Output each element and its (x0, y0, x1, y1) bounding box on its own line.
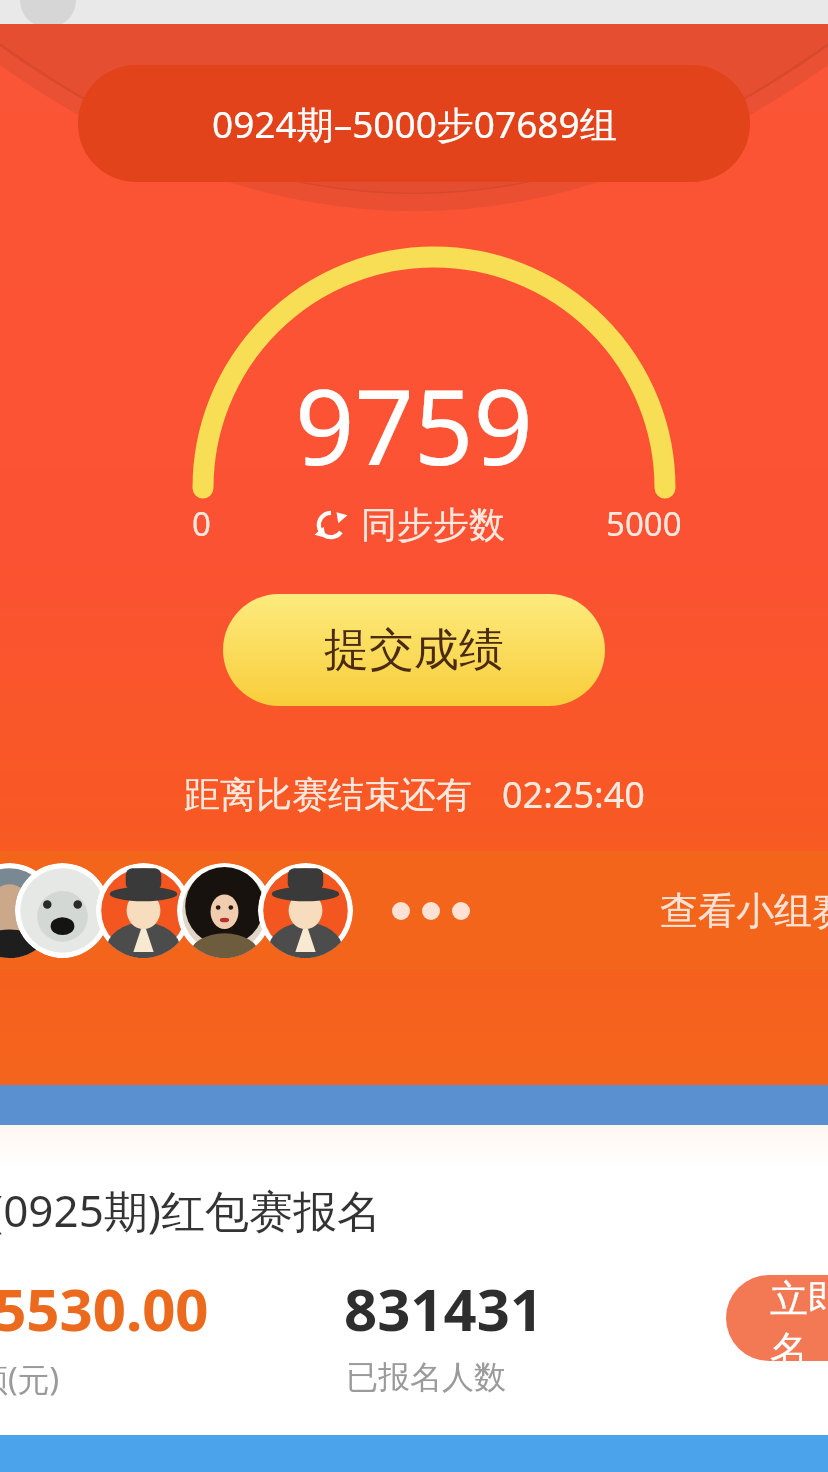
staticText: 15530.00 (0, 1269, 209, 1348)
staticText: 同步步数 (361, 502, 505, 547)
button[interactable]: Member avatar (177, 863, 272, 958)
staticText: 0 (192, 501, 211, 546)
button[interactable]: 查看小组赛 (660, 887, 828, 935)
staticText: 5000 (606, 501, 682, 546)
button[interactable]: (0925期)红包赛报名 (0, 1125, 828, 1435)
staticText: (0925期)红包赛报名 (0, 1180, 382, 1240)
staticText: 0924期–5000步07689组 (212, 98, 617, 149)
staticText: 已报名人数 (346, 1357, 506, 1397)
staticText: 立即报名 (770, 1275, 828, 1361)
button[interactable]: Member avatar (15, 863, 110, 958)
button[interactable]: 0924期–5000步07689组 (78, 65, 750, 182)
staticText: 831431 (344, 1269, 544, 1348)
other: Sync steps (312, 506, 350, 544)
button[interactable]: More members (392, 902, 470, 920)
staticText: 9759 (295, 354, 533, 496)
button[interactable]: Sync steps (312, 502, 505, 547)
button[interactable]: 提交成绩 (223, 594, 605, 706)
staticText: 额(元) (0, 1357, 60, 1401)
button[interactable]: Member avatar (0, 863, 57, 958)
button[interactable]: Member avatar (96, 863, 191, 958)
staticText: 提交成绩 (324, 622, 504, 679)
staticText: 02:25:40 (502, 770, 645, 819)
staticText: 查看小组赛 (660, 887, 828, 935)
button[interactable]: 立即报名 (726, 1275, 828, 1361)
button[interactable]: Member avatar (258, 863, 353, 958)
staticText: 距离比赛结束还有 (184, 772, 472, 817)
